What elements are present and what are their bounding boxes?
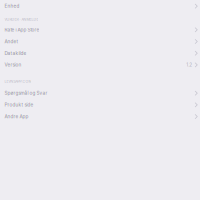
button[interactable]: Enhed bbox=[0, 0, 200, 12]
staticText: LEVNSAPP.COM bbox=[4, 79, 31, 84]
staticText: 1.2 bbox=[186, 62, 192, 68]
staticText: Spørgsmål og Svar bbox=[4, 90, 47, 96]
button[interactable]: Version bbox=[0, 59, 200, 71]
staticText: Version bbox=[4, 62, 21, 68]
staticText: Produkt side bbox=[4, 102, 33, 108]
button[interactable]: Andre App bbox=[0, 111, 200, 122]
button[interactable]: Rate i App Store bbox=[0, 24, 200, 36]
staticText: Datakilde bbox=[4, 50, 26, 56]
button[interactable]: Produkt side bbox=[0, 99, 200, 111]
button[interactable]: Datakilde bbox=[0, 47, 200, 59]
staticText: Rate i App Store bbox=[4, 27, 39, 33]
staticText: VURDER · ANMELDE bbox=[4, 17, 38, 22]
staticText: Andet bbox=[4, 39, 18, 44]
staticText: Andre App bbox=[4, 114, 28, 119]
button[interactable]: Spørgsmål og Svar bbox=[0, 87, 200, 99]
button[interactable]: Andet bbox=[0, 36, 200, 47]
staticText: Enhed bbox=[4, 3, 19, 9]
